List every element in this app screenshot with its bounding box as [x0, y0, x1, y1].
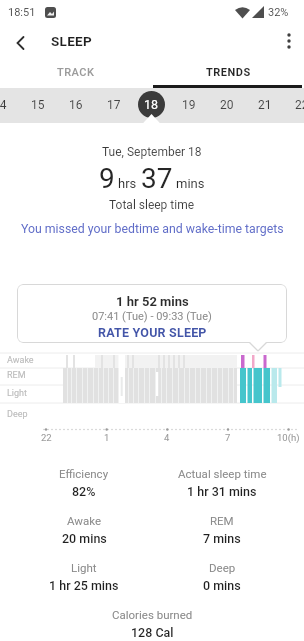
staticText: hrs: [118, 176, 137, 191]
staticText: 32%: [268, 6, 289, 19]
button[interactable]: RATE YOUR SLEEP: [77, 324, 227, 340]
staticText: 7 mins: [203, 531, 241, 546]
staticText: 128 Cal: [131, 625, 174, 640]
staticText: 1: [104, 432, 110, 443]
staticText: 17: [107, 98, 121, 112]
staticText: Awake: [67, 514, 102, 527]
button[interactable]: 14: [0, 94, 19, 116]
staticText: mins: [176, 176, 205, 191]
button[interactable]: 19: [170, 94, 208, 116]
button[interactable]: 17: [95, 94, 133, 116]
button[interactable]: 20: [208, 94, 246, 116]
button[interactable]: 16: [57, 94, 95, 116]
staticText: TRACK: [57, 66, 95, 79]
button[interactable]: 18: [138, 91, 165, 118]
staticText: 1 hr 31 mins: [187, 484, 257, 499]
staticText: 16: [69, 98, 83, 112]
button[interactable]: 21: [246, 94, 284, 116]
button[interactable]: [6, 28, 36, 58]
staticText: 1 hr 52 mins: [116, 294, 189, 309]
staticText: 1 hr 25 mins: [49, 578, 119, 593]
button[interactable]: 1 hr 52 mins: [17, 284, 287, 343]
staticText: Deep: [209, 561, 236, 574]
staticText: REM: [7, 370, 26, 381]
staticText: 20: [220, 98, 234, 112]
button[interactable]: TRACK: [0, 59, 152, 85]
staticText: 9: [99, 162, 115, 195]
staticText: Efficiency: [59, 467, 109, 480]
button[interactable]: 22: [283, 94, 304, 116]
staticText: Light: [71, 561, 97, 574]
button[interactable]: 15: [19, 94, 57, 116]
staticText: Total sleep time: [109, 198, 195, 212]
staticText: 7: [225, 432, 231, 443]
staticText: 15: [31, 98, 45, 112]
staticText: REM: [210, 514, 234, 527]
staticText: 37: [141, 162, 173, 195]
staticText: 82%: [72, 484, 96, 499]
staticText: 10(h): [277, 432, 300, 443]
staticText: Actual sleep time: [178, 467, 267, 480]
staticText: 14: [0, 98, 7, 112]
staticText: Light: [7, 388, 27, 399]
button[interactable]: [276, 28, 302, 54]
staticText: 22: [295, 98, 304, 112]
button[interactable]: TRENDS: [152, 59, 304, 85]
staticText: 20 mins: [62, 531, 107, 546]
button[interactable]: You missed your bedtime and wake-time ta…: [0, 0, 304, 20]
staticText: Tue, September 18: [102, 145, 202, 159]
staticText: 19: [182, 98, 196, 112]
staticText: 4: [164, 432, 170, 443]
staticText: 0 mins: [203, 578, 241, 593]
staticText: 07:41 (Tue) - 09:33 (Tue): [92, 310, 212, 323]
staticText: 22: [41, 432, 52, 443]
staticText: TRENDS: [206, 66, 251, 79]
staticText: Calories burned: [112, 608, 193, 621]
staticText: You missed your bedtime and wake-time ta…: [21, 222, 284, 236]
staticText: Deep: [7, 409, 28, 420]
staticText: 18:51: [8, 6, 36, 19]
staticText: 21: [258, 98, 272, 112]
staticText: 18: [144, 97, 159, 112]
staticText: RATE YOUR SLEEP: [98, 325, 207, 340]
staticText: SLEEP: [51, 33, 93, 49]
staticText: Awake: [7, 355, 34, 366]
